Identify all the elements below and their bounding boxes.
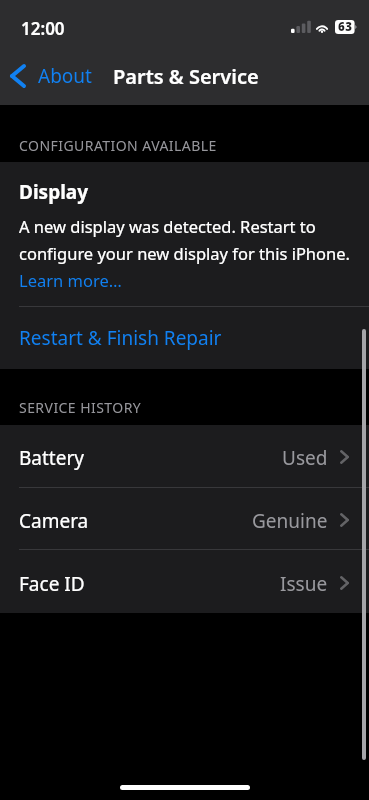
- staticText: Battery: [19, 445, 84, 471]
- button[interactable]: Battery: [0, 425, 369, 487]
- staticText: SERVICE HISTORY: [19, 398, 142, 417]
- staticText: Display: [19, 179, 89, 205]
- button[interactable]: Face ID: [0, 550, 369, 613]
- staticText: Parts & Service: [113, 63, 259, 90]
- staticText: 63: [338, 19, 353, 33]
- staticText: About: [38, 63, 92, 89]
- staticText: Camera: [19, 508, 89, 534]
- staticText: Genuine: [252, 508, 328, 534]
- button[interactable]: Camera: [0, 488, 369, 549]
- staticText: CONFIGURATION AVAILABLE: [19, 136, 217, 155]
- button[interactable]: Restart & Finish Repair: [0, 307, 369, 369]
- button[interactable]: Display: [0, 162, 369, 306]
- button[interactable]: Back to About: [0, 57, 102, 97]
- staticText: Issue: [280, 571, 328, 597]
- staticText: Face ID: [19, 571, 85, 597]
- staticText: Restart & Finish Repair: [19, 325, 222, 351]
- staticText: 12:00: [21, 17, 65, 40]
- staticText: Learn more…: [19, 266, 122, 293]
- staticText: Used: [282, 445, 328, 471]
- staticText: A new display was detected. Restart to c…: [19, 212, 352, 266]
